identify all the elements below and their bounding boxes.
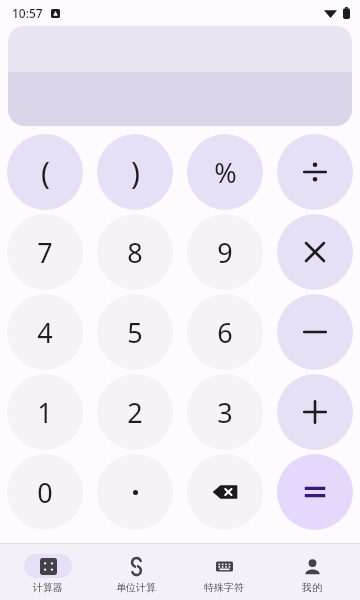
button[interactable]: 2 <box>97 374 173 450</box>
button[interactable]: Equals <box>277 454 353 530</box>
button[interactable]: Divide <box>277 134 353 210</box>
staticText: 0 <box>37 474 53 511</box>
button[interactable]: Multiply <box>277 214 353 290</box>
staticText: 我的 <box>302 581 322 594</box>
button[interactable]: ) <box>97 134 173 210</box>
staticText: 10:57 <box>12 5 43 21</box>
button[interactable]: 8 <box>97 214 173 290</box>
staticText: 2 <box>127 394 143 431</box>
staticText: % <box>214 154 237 191</box>
staticText: 单位计算 <box>116 581 156 594</box>
button[interactable]: 7 <box>7 214 83 290</box>
button[interactable]: . <box>97 454 173 530</box>
button[interactable]: Plus <box>277 374 353 450</box>
button[interactable]: 我的 <box>272 550 352 594</box>
staticText: 3 <box>217 394 233 431</box>
button[interactable]: % <box>187 134 263 210</box>
button[interactable]: 6 <box>187 294 263 370</box>
button[interactable]: 5 <box>97 294 173 370</box>
button[interactable]: 1 <box>7 374 83 450</box>
staticText: 6 <box>217 314 233 351</box>
button[interactable]: 单位计算 <box>96 550 176 594</box>
button[interactable]: 计算器 <box>8 550 88 594</box>
button[interactable]: 0 <box>7 454 83 530</box>
button[interactable]: 特殊字符 <box>184 550 264 594</box>
staticText: 1 <box>37 394 53 431</box>
staticText: ( <box>41 152 50 193</box>
button[interactable]: 9 <box>187 214 263 290</box>
staticText: 5 <box>127 314 143 351</box>
staticText: 计算器 <box>33 581 63 594</box>
button[interactable]: Minus <box>277 294 353 370</box>
staticText: 9 <box>217 234 233 271</box>
staticText: 特殊字符 <box>204 581 244 594</box>
button[interactable]: ( <box>7 134 83 210</box>
staticText: 7 <box>37 234 53 271</box>
staticText: ) <box>131 152 140 193</box>
staticText: 4 <box>37 314 53 351</box>
button[interactable]: 3 <box>187 374 263 450</box>
staticText: 8 <box>127 234 143 271</box>
button[interactable]: Backspace <box>187 454 263 530</box>
button[interactable]: 4 <box>7 294 83 370</box>
